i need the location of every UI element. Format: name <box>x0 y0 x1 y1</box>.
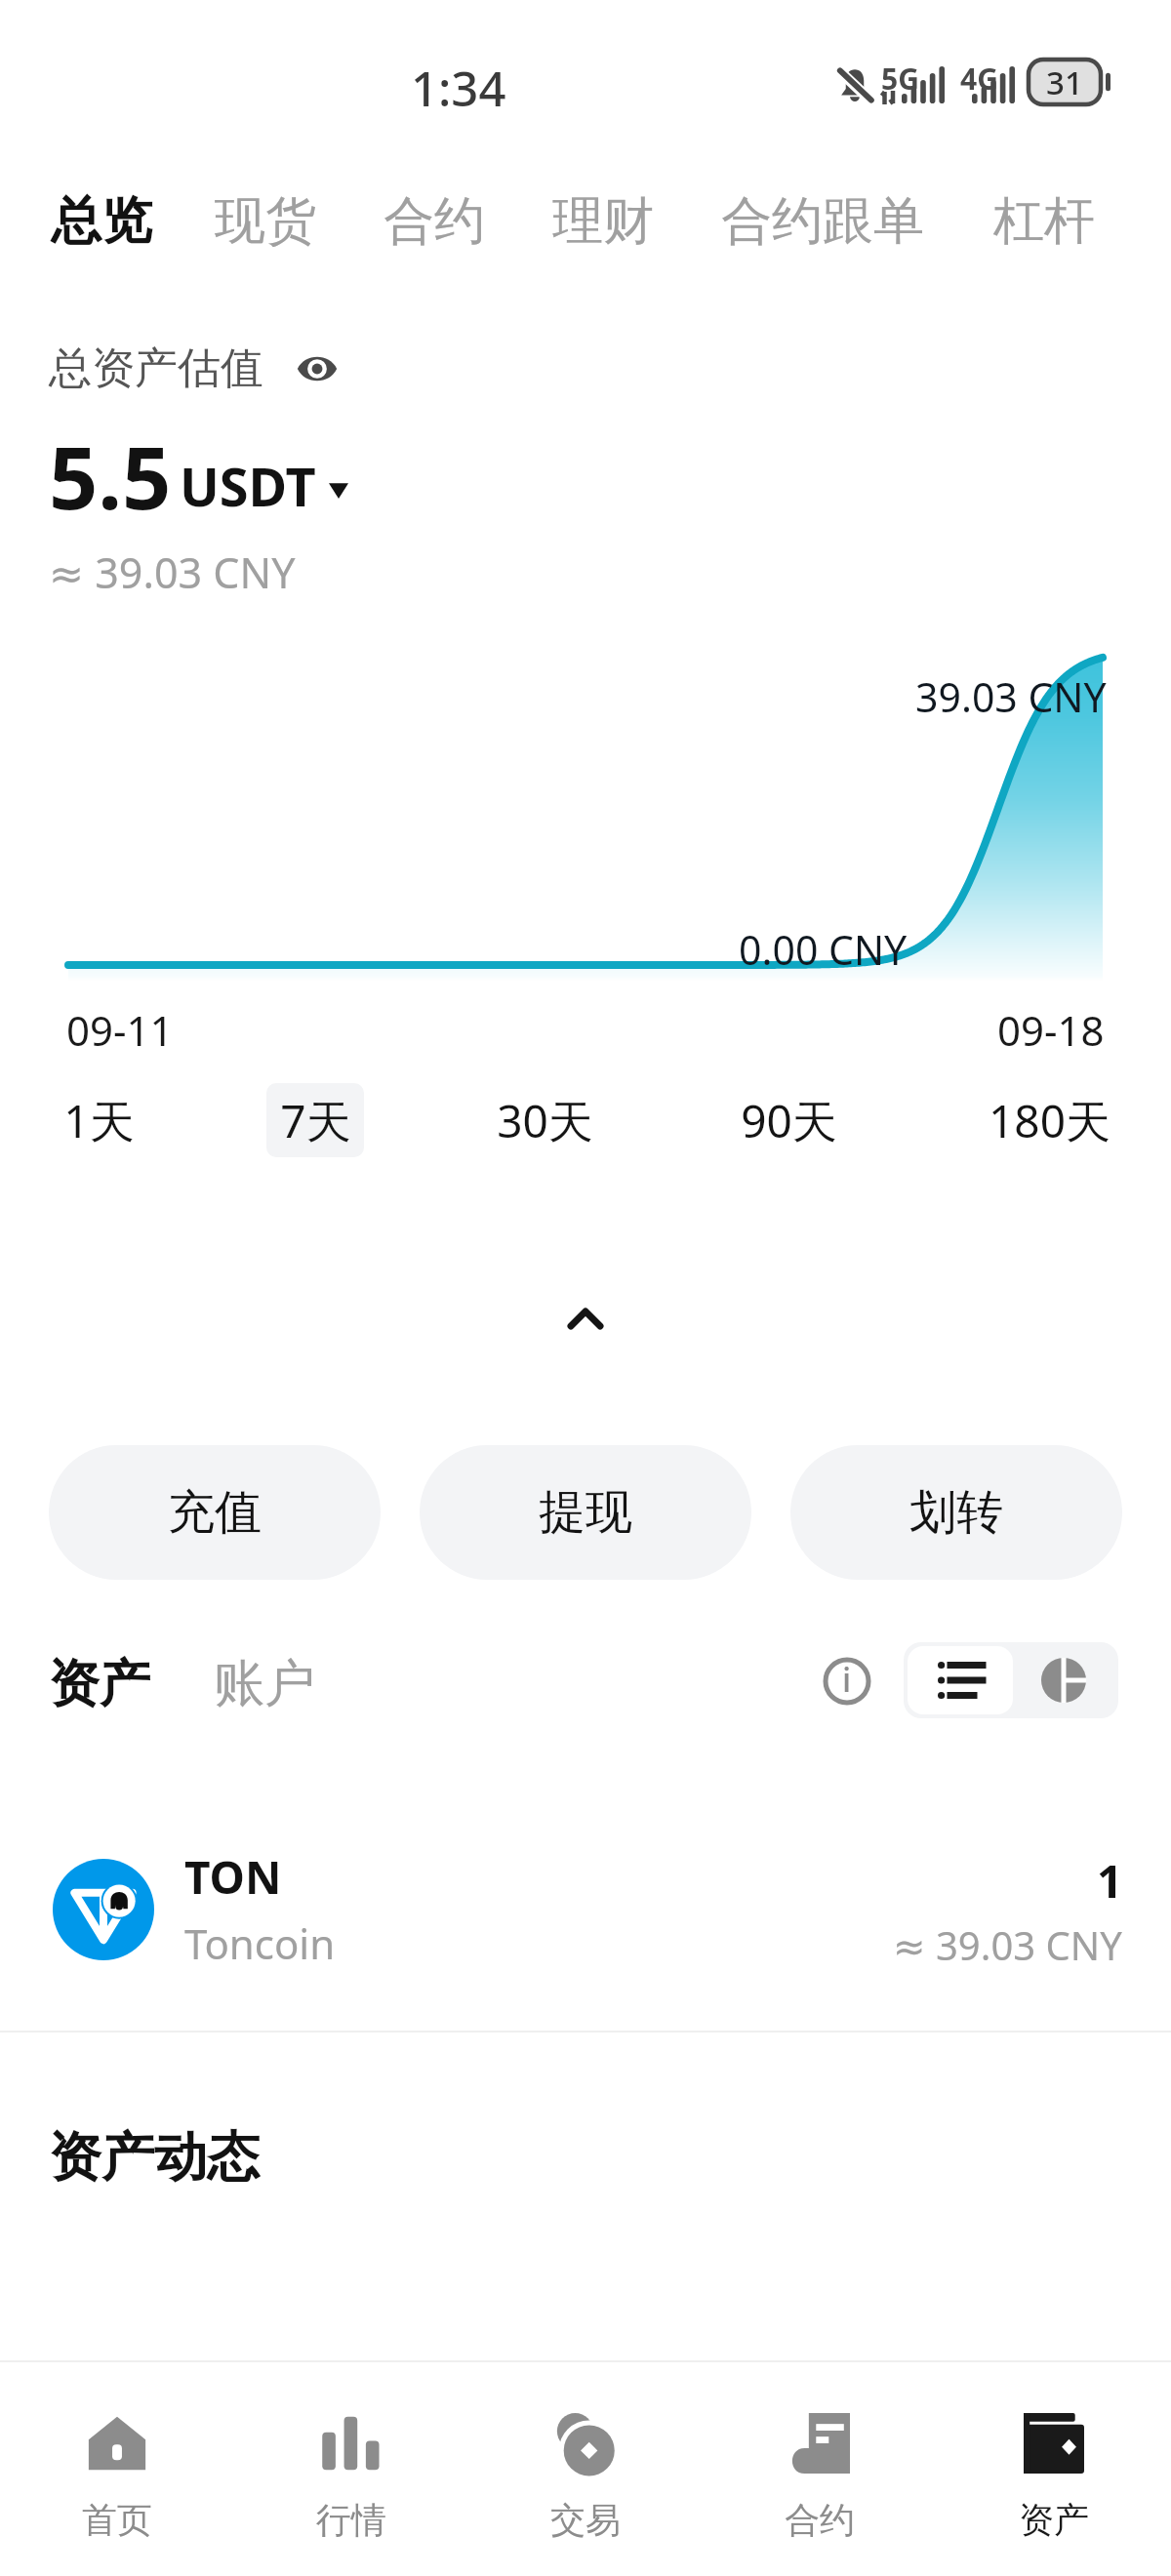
button[interactable]: 账户 <box>214 1652 315 1716</box>
staticText: 总览 <box>51 189 152 254</box>
staticText: 5.5 <box>49 418 172 535</box>
button[interactable]: 提现 <box>420 1445 751 1580</box>
button[interactable]: 资产 <box>937 2362 1171 2542</box>
button[interactable]: 1天 <box>45 1083 152 1157</box>
staticText: 充值 <box>168 1483 262 1542</box>
staticText: 账户 <box>214 1652 315 1716</box>
button[interactable]: 合约 <box>368 166 501 277</box>
staticText: USDT <box>180 450 316 522</box>
staticText: 现货 <box>215 189 316 254</box>
staticText: 7天 <box>280 1090 351 1151</box>
staticText: 90天 <box>741 1090 837 1151</box>
button[interactable]: 合约跟单 <box>706 166 940 277</box>
staticText: 09-18 <box>997 1002 1105 1058</box>
button[interactable]: Change currency <box>328 478 349 502</box>
staticText: 合约跟单 <box>721 189 924 254</box>
staticText: 30天 <box>497 1090 593 1151</box>
button[interactable]: 现货 <box>199 166 332 277</box>
staticText: 资产动态 <box>49 2124 260 2191</box>
staticText: ≈ 39.03 CNY <box>49 543 296 601</box>
staticText: TON <box>184 1846 282 1908</box>
button[interactable]: Info <box>823 1657 871 1706</box>
staticText: 交易 <box>550 2498 621 2542</box>
staticText: 资产 <box>1019 2498 1089 2542</box>
staticText: 理财 <box>552 189 654 254</box>
button[interactable]: 总览 <box>35 166 168 277</box>
button[interactable]: List view <box>908 1646 1013 1714</box>
staticText: 180天 <box>989 1090 1110 1151</box>
button[interactable]: 30天 <box>471 1083 618 1157</box>
staticText: i <box>842 1657 852 1702</box>
button[interactable]: Hide balance <box>297 352 338 385</box>
staticText: ≈ 39.03 CNY <box>893 1918 1122 1971</box>
staticText: 合约 <box>785 2498 855 2542</box>
staticText: 划转 <box>909 1483 1003 1542</box>
staticText: 1天 <box>63 1090 135 1151</box>
staticText: 总资产估值 <box>49 342 263 395</box>
staticText: 提现 <box>539 1483 632 1542</box>
button[interactable]: 行情 <box>234 2362 468 2542</box>
staticText: 39.03 CNY <box>915 669 1107 724</box>
button[interactable]: 交易 <box>468 2362 703 2542</box>
staticText: 1 <box>1097 1850 1123 1912</box>
button[interactable]: 充值 <box>49 1445 381 1580</box>
button[interactable]: 划转 <box>790 1445 1122 1580</box>
staticText: 首页 <box>82 2498 152 2542</box>
staticText: 09-11 <box>66 1002 174 1058</box>
staticText: 1:34 <box>411 56 506 121</box>
button[interactable]: 资产 <box>49 1652 150 1716</box>
staticText: 杠杆 <box>993 189 1095 254</box>
staticText: 5G <box>881 59 919 99</box>
button[interactable]: 7天 <box>266 1083 364 1157</box>
staticText: 4G <box>960 59 998 99</box>
button[interactable]: 180天 <box>956 1083 1142 1157</box>
button[interactable]: Collapse <box>546 1278 625 1356</box>
button[interactable]: TON <box>0 1834 1171 1986</box>
button[interactable]: 合约 <box>703 2362 937 2542</box>
button[interactable]: 杠杆 <box>978 166 1110 277</box>
staticText: Toncoin <box>184 1915 336 1971</box>
button[interactable]: 90天 <box>715 1083 862 1157</box>
staticText: 资产 <box>49 1652 150 1716</box>
staticText: 合约 <box>384 189 485 254</box>
staticText: 0.00 CNY <box>739 922 908 977</box>
staticText: 31 <box>1046 60 1083 104</box>
button[interactable]: 理财 <box>537 166 669 277</box>
staticText: 行情 <box>316 2498 386 2542</box>
button[interactable]: Chart view <box>1013 1646 1114 1714</box>
button[interactable]: 首页 <box>0 2362 234 2542</box>
